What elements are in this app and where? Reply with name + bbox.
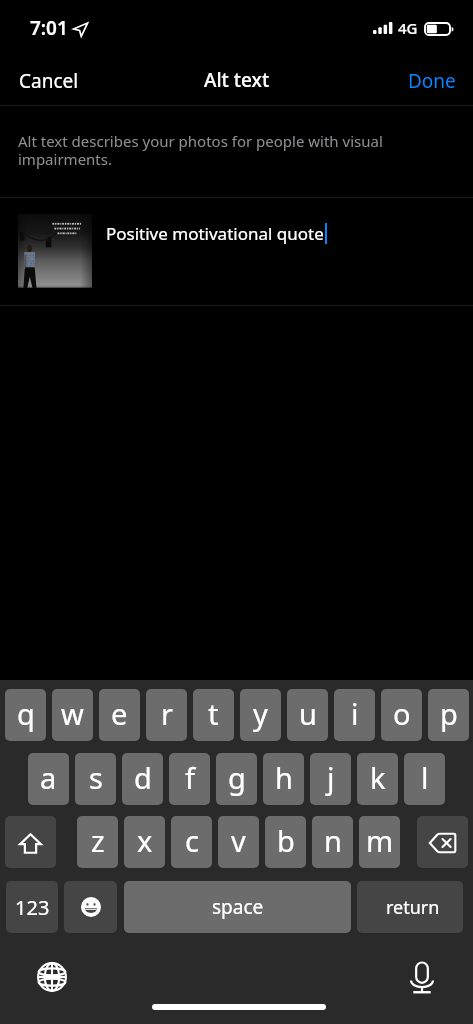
- button[interactable]: Positive motivational quote: [0, 198, 473, 305]
- staticText: f: [185, 758, 195, 797]
- button[interactable]: t: [193, 689, 234, 741]
- button[interactable]: n: [312, 816, 353, 868]
- button[interactable]: k: [357, 753, 398, 805]
- staticText: j: [327, 758, 335, 797]
- staticText: Alt text describes your photos for peopl…: [18, 131, 383, 169]
- button[interactable]: z: [77, 816, 118, 868]
- staticText: return: [386, 895, 440, 920]
- button[interactable]: j: [310, 753, 351, 805]
- button[interactable]: space: [124, 881, 351, 933]
- button[interactable]: d: [122, 753, 163, 805]
- staticText: Positive motivational quote: [106, 222, 324, 245]
- staticText: i: [351, 694, 359, 733]
- button[interactable]: Emoji: [64, 881, 117, 933]
- staticText: e: [111, 694, 128, 733]
- button[interactable]: v: [218, 816, 259, 868]
- staticText: v: [231, 821, 246, 860]
- staticText: g: [228, 758, 246, 797]
- staticText: h: [275, 758, 293, 797]
- staticText: 7:01: [30, 15, 68, 41]
- staticText: 4G: [398, 18, 418, 38]
- staticText: n: [324, 821, 342, 860]
- button[interactable]: c: [171, 816, 212, 868]
- staticText: Done: [408, 68, 456, 94]
- staticText: t: [208, 694, 219, 733]
- button[interactable]: q: [5, 689, 46, 741]
- staticText: p: [440, 694, 458, 733]
- staticText: Alt text: [204, 67, 270, 93]
- staticText: k: [370, 758, 386, 797]
- staticText: z: [91, 821, 105, 860]
- button[interactable]: b: [265, 816, 306, 868]
- staticText: d: [134, 758, 152, 797]
- button[interactable]: p: [428, 689, 469, 741]
- button[interactable]: Dictate: [405, 961, 438, 995]
- button[interactable]: Backspace: [417, 816, 468, 868]
- staticText: c: [185, 821, 199, 860]
- staticText: x: [137, 821, 153, 860]
- button[interactable]: x: [124, 816, 165, 868]
- staticText: m: [366, 821, 394, 860]
- staticText: q: [17, 694, 35, 733]
- button[interactable]: Shift: [5, 816, 56, 868]
- button[interactable]: l: [404, 753, 445, 805]
- button[interactable]: m: [359, 816, 400, 868]
- button[interactable]: return: [357, 881, 463, 933]
- staticText: w: [61, 694, 84, 733]
- button[interactable]: e: [99, 689, 140, 741]
- button[interactable]: g: [216, 753, 257, 805]
- staticText: o: [393, 694, 411, 733]
- button[interactable]: o: [381, 689, 422, 741]
- staticText: s: [89, 758, 103, 797]
- button[interactable]: f: [169, 753, 210, 805]
- staticText: r: [161, 694, 173, 733]
- staticText: l: [421, 758, 429, 797]
- staticText: space: [212, 894, 264, 920]
- button[interactable]: r: [146, 689, 187, 741]
- button[interactable]: a: [28, 753, 69, 805]
- staticText: y: [253, 694, 268, 733]
- staticText: Cancel: [19, 68, 79, 94]
- button[interactable]: i: [334, 689, 375, 741]
- button[interactable]: Change keyboard: [35, 960, 69, 994]
- staticText: u: [299, 694, 317, 733]
- button[interactable]: 123: [6, 881, 58, 933]
- button[interactable]: w: [52, 689, 93, 741]
- button[interactable]: Cancel: [3, 60, 95, 102]
- button[interactable]: y: [240, 689, 281, 741]
- button[interactable]: u: [287, 689, 328, 741]
- button[interactable]: s: [75, 753, 116, 805]
- button[interactable]: Done: [392, 60, 472, 102]
- staticText: 123: [15, 894, 50, 921]
- button[interactable]: h: [263, 753, 304, 805]
- staticText: b: [277, 821, 295, 860]
- staticText: a: [40, 758, 57, 797]
